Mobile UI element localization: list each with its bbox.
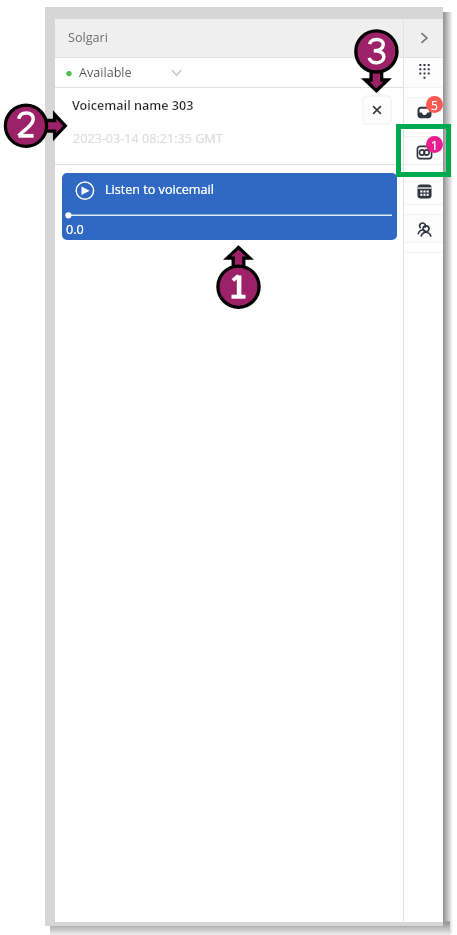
staticText: 1 (431, 137, 438, 153)
button[interactable]: Dialpad (404, 58, 443, 88)
button[interactable]: Inbox (404, 98, 443, 126)
staticText: Voicemail name 303 (72, 97, 194, 114)
staticText: 0.0 (66, 221, 84, 238)
button[interactable]: Available (55, 58, 403, 87)
button[interactable]: Expand panel (404, 19, 443, 57)
staticText: Available (79, 64, 132, 81)
staticText: 2023-03-14 08:21:35 GMT (73, 130, 223, 147)
staticText: 5 (431, 97, 438, 113)
staticText: Listen to voicemail (105, 181, 214, 198)
button[interactable]: Close (363, 96, 391, 124)
button[interactable]: Voicemail (404, 137, 443, 165)
button[interactable]: Calendar (404, 177, 443, 205)
button[interactable]: Contacts (404, 215, 443, 243)
staticText: Solgari (68, 29, 108, 46)
button[interactable]: Listen to voicemail (62, 173, 397, 240)
